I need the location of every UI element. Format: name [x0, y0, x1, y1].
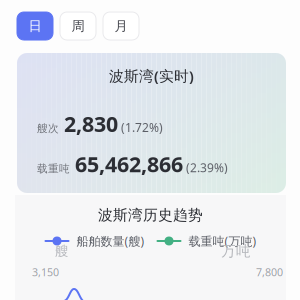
staticText: 3,150 [32, 265, 59, 279]
button[interactable]: 月 [103, 12, 139, 40]
staticText: 2,830 [64, 109, 118, 138]
staticText: 载重吨 [37, 162, 70, 175]
staticText: 波斯湾历史趋势 [98, 206, 203, 224]
staticText: 周 [71, 18, 84, 34]
staticText: (2.39%) [186, 160, 228, 175]
staticText: 日 [28, 18, 41, 34]
staticText: 65,462,866 [75, 150, 183, 178]
staticText: (1.72%) [121, 119, 163, 135]
staticText: 艘次 [37, 122, 59, 135]
staticText: 船舶数量(艘) [76, 233, 144, 249]
button[interactable]: 船舶数量(艘) [44, 233, 144, 249]
staticText: 月 [114, 18, 127, 34]
button[interactable]: 日 [17, 12, 53, 40]
staticText: 载重吨(万吨) [188, 233, 256, 249]
button[interactable]: 载重吨(万吨) [156, 233, 256, 249]
button[interactable]: 周 [60, 12, 96, 40]
staticText: 7,800 [256, 265, 283, 279]
staticText: 万吨 [221, 242, 251, 260]
staticText: 波斯湾(实时) [109, 66, 194, 85]
staticText: 艘 [55, 243, 68, 259]
